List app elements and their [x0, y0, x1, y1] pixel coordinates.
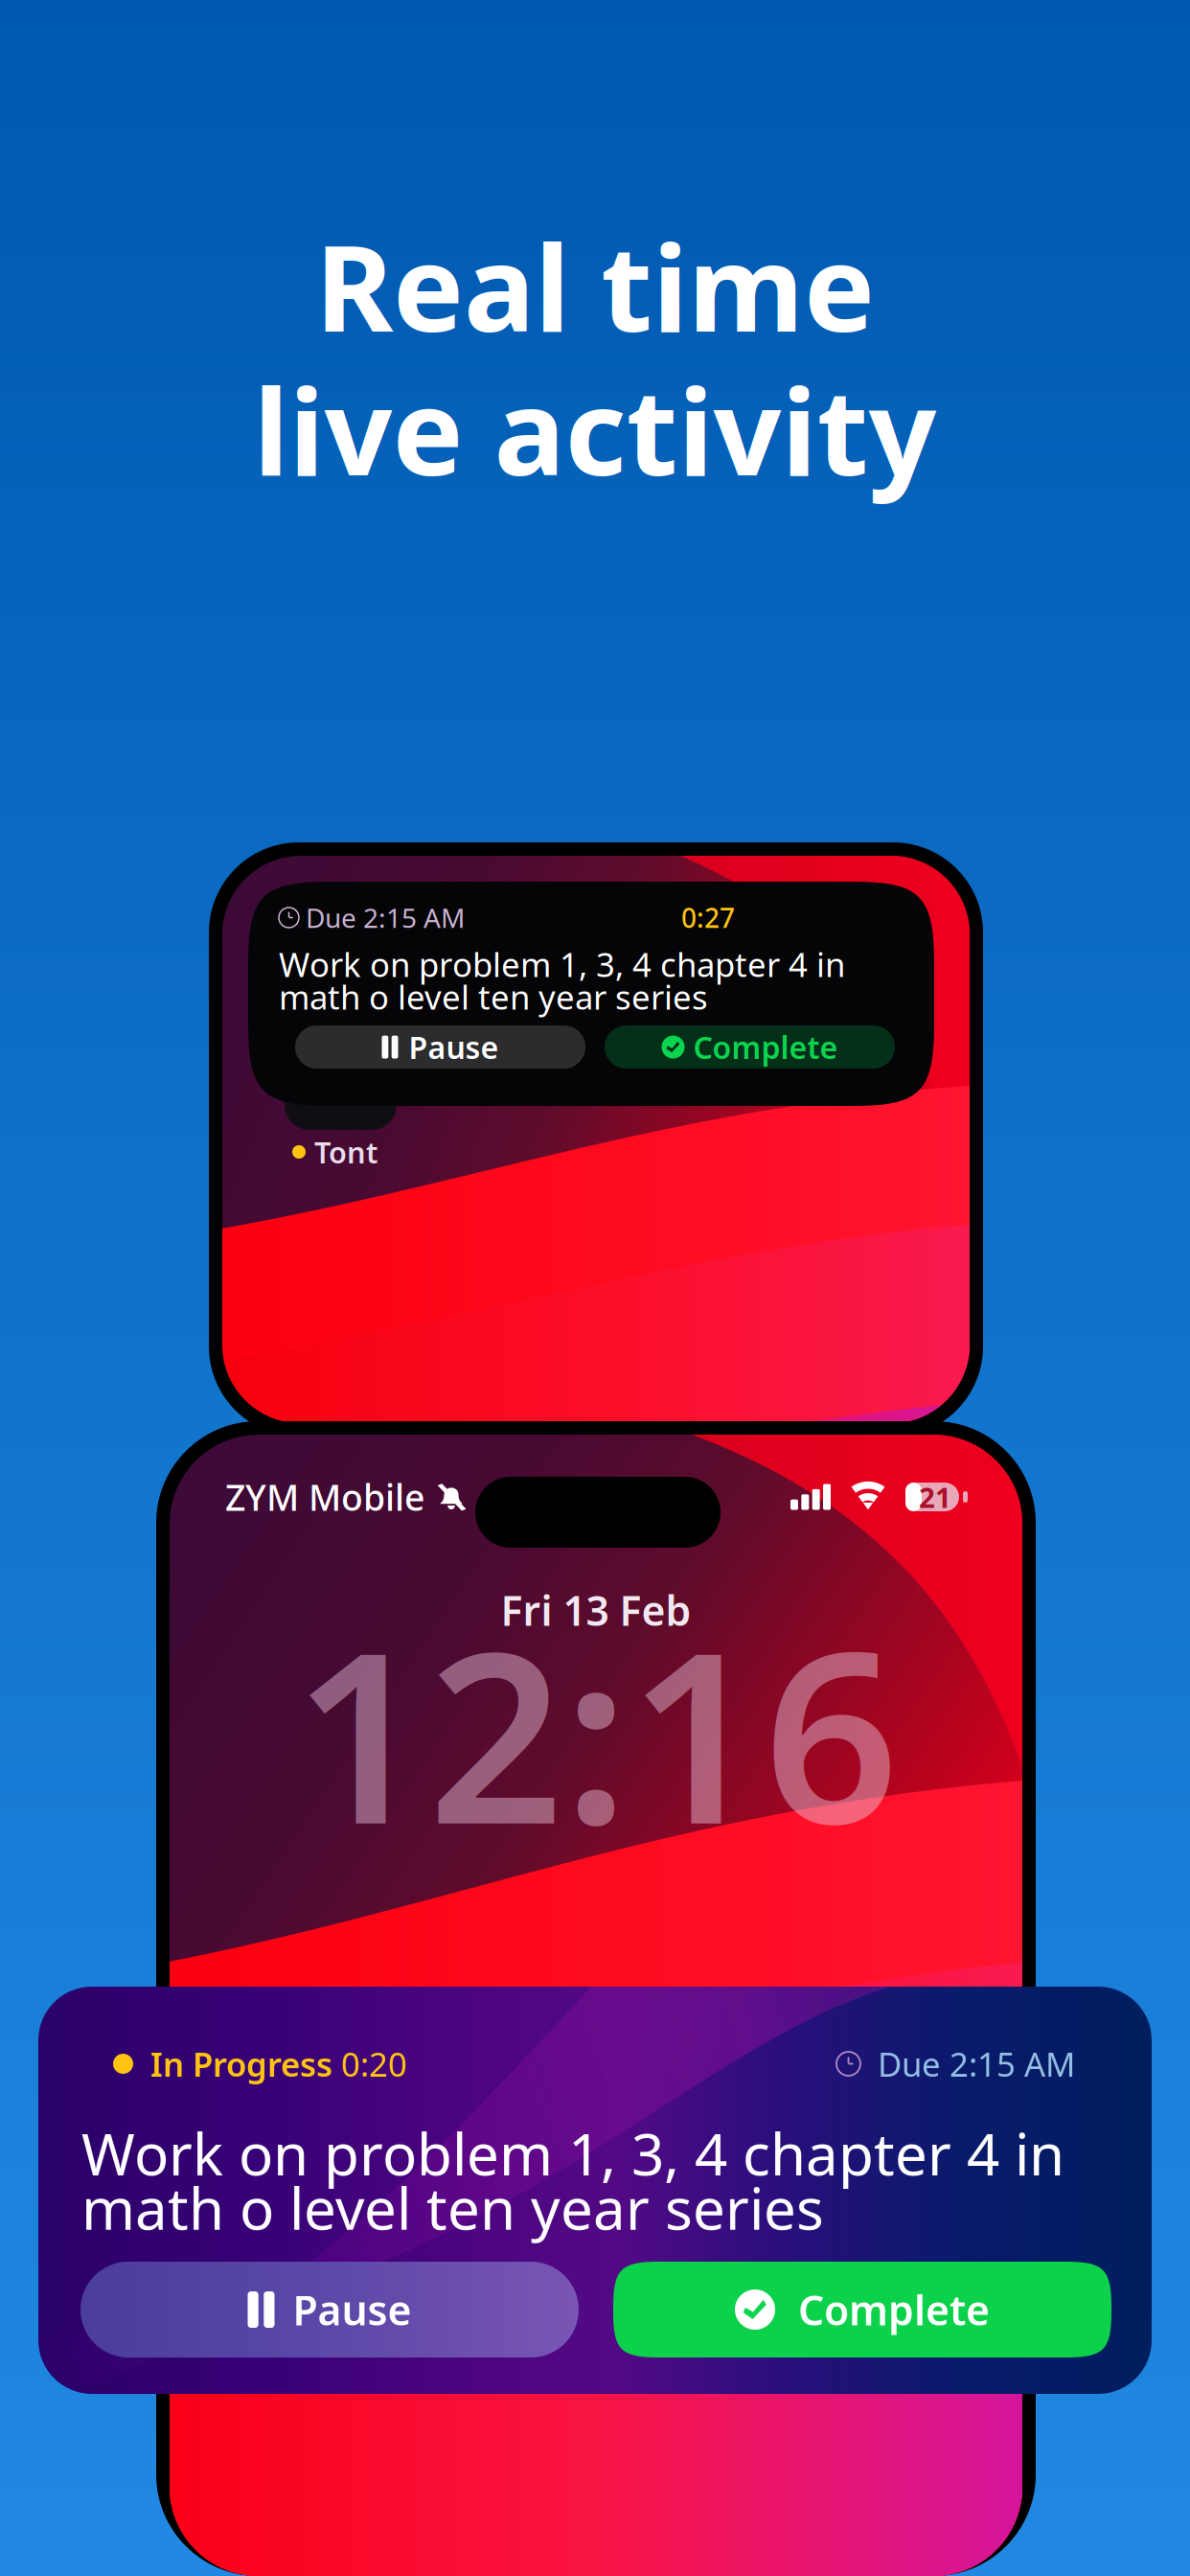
staticText: In Progress [133, 2042, 341, 2086]
button[interactable]: Complete [613, 2262, 1111, 2357]
staticText: 21 [919, 1478, 951, 1516]
staticText: ZYM Mobile [225, 1473, 424, 1521]
staticText: Complete [798, 2282, 990, 2337]
staticText: 0:27 [681, 900, 735, 935]
button[interactable]: Pause [80, 2262, 579, 2357]
staticText: live activity [253, 350, 937, 508]
staticText: Work on problem 1, 3, 4 chapter 4 in mat… [279, 942, 845, 1019]
staticText: Due 2:15 AM [860, 2042, 1075, 2086]
staticText: 12:16 [293, 1575, 899, 1889]
staticText: Tont [314, 1132, 378, 1171]
button[interactable]: Complete [605, 1026, 895, 1069]
staticText: Pause [293, 2282, 412, 2337]
staticText: Real time [315, 207, 875, 365]
staticText: Pause [409, 1027, 499, 1067]
staticText: Work on problem 1, 3, 4 chapter 4 in mat… [81, 2115, 1064, 2246]
button[interactable]: Pause [295, 1026, 585, 1069]
staticText: Fri 13 Feb [501, 1583, 691, 1637]
staticText: 0:20 [341, 2042, 407, 2086]
staticText: Due 2:15 AM [299, 900, 465, 935]
staticText: Complete [693, 1027, 838, 1067]
